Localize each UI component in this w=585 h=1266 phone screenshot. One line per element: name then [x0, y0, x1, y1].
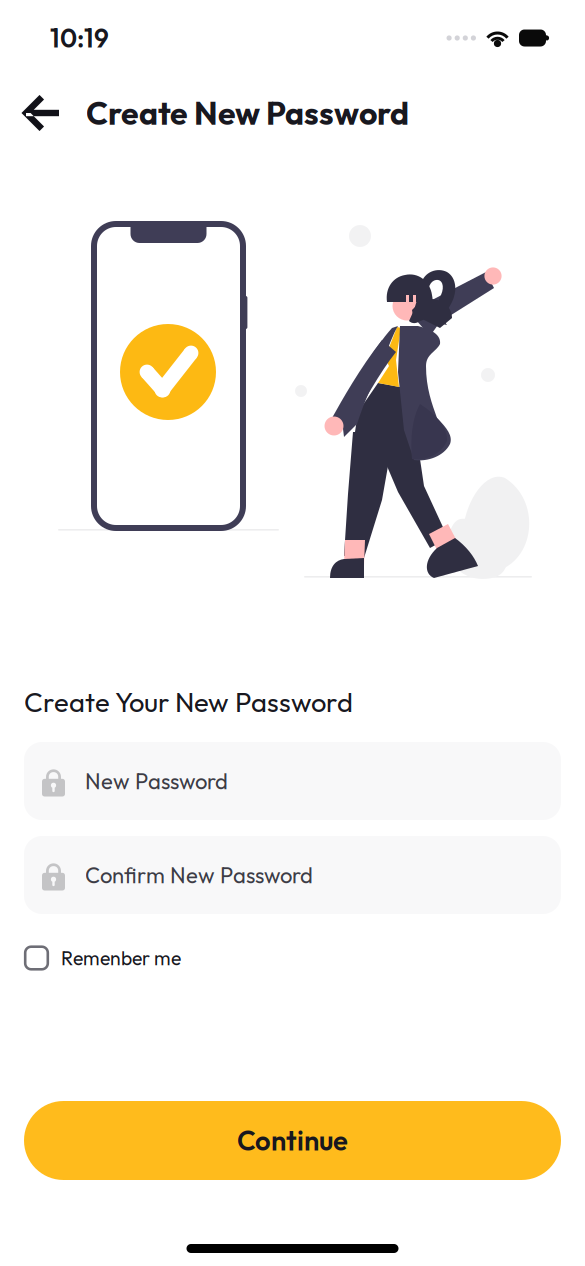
staticText: Continue — [237, 1123, 348, 1158]
staticText: New Password — [85, 767, 228, 795]
staticText: Create New Password — [86, 93, 409, 133]
button[interactable]: Continue — [24, 1101, 561, 1180]
button[interactable]: Remenber me — [24, 945, 561, 971]
staticText: Remenber me — [61, 946, 181, 970]
staticText: Confirm New Password — [85, 861, 313, 889]
button[interactable]: Back — [13, 85, 72, 141]
staticText: Create Your New Password — [24, 685, 353, 719]
staticText: 10:19 — [50, 22, 109, 54]
